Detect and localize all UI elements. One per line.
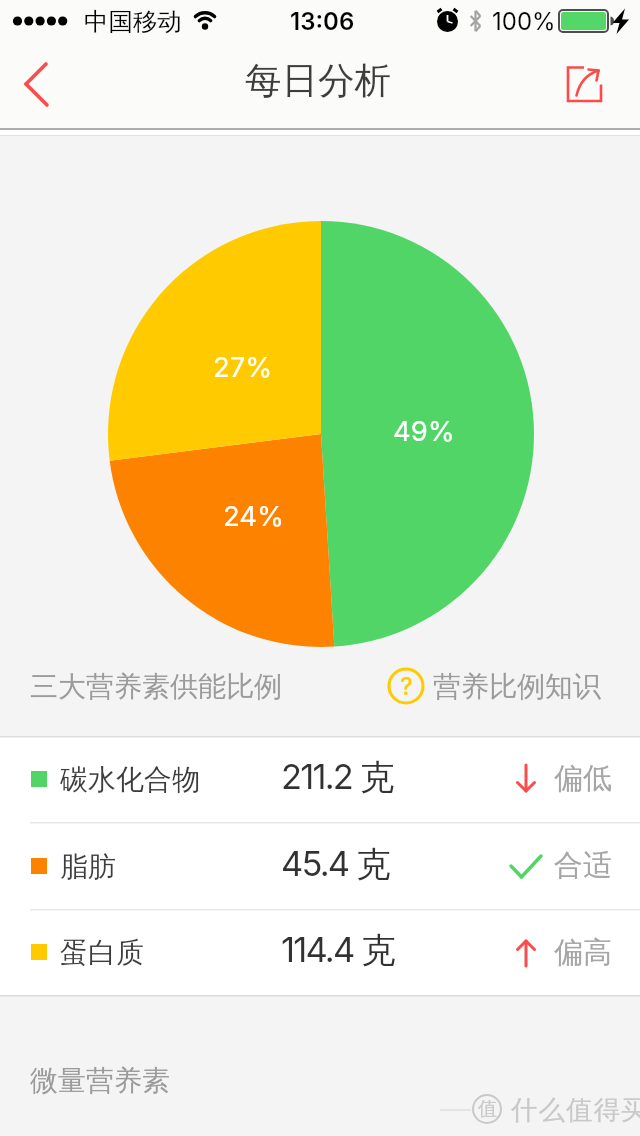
staticText: 24%: [223, 499, 285, 532]
staticText: 偏低: [554, 760, 612, 797]
staticText: 每日分析: [245, 58, 391, 104]
staticText: 什么值得买: [511, 1093, 640, 1126]
staticText: 偏高: [554, 934, 612, 971]
staticText: 微量营养素: [30, 1063, 170, 1098]
staticText: 碳水化合物: [60, 762, 200, 797]
staticText: 合适: [554, 847, 612, 884]
staticText: 49%: [393, 414, 455, 447]
staticText: 营养比例知识: [433, 669, 601, 704]
staticText: 211.2 克: [281, 756, 393, 800]
staticText: 100%: [492, 7, 556, 36]
staticText: 值: [478, 1097, 497, 1121]
staticText: 114.4 克: [281, 929, 395, 973]
staticText: 中国移动: [84, 6, 182, 37]
staticText: ?: [400, 672, 413, 701]
staticText: 45.4 克: [281, 843, 389, 887]
staticText: 13:06: [290, 7, 355, 36]
staticText: 27%: [213, 350, 273, 383]
staticText: 蛋白质: [60, 935, 144, 970]
staticText: 三大营养素供能比例: [30, 669, 282, 704]
staticText: 脂肪: [60, 849, 116, 884]
